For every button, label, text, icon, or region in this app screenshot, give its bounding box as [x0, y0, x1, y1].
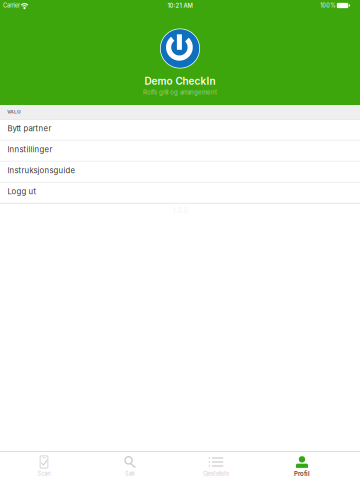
- staticText: Demo CheckIn: [144, 75, 215, 87]
- staticText: Søk: [125, 470, 135, 477]
- staticText: Innstillinger: [7, 145, 52, 154]
- staticText: Instruksjonsguide: [7, 166, 75, 175]
- staticText: Profil: [294, 470, 310, 477]
- button[interactable]: Logg ut: [0, 183, 360, 204]
- staticText: 100%: [320, 2, 335, 9]
- staticText: Gjesteliste: [203, 470, 229, 477]
- staticText: 10:21 AM: [167, 2, 192, 9]
- staticText: Logg ut: [7, 187, 36, 196]
- staticText: Scan: [37, 470, 50, 477]
- button[interactable]: Bytt partner: [0, 120, 360, 141]
- staticText: Bytt partner: [7, 124, 51, 133]
- staticText: VALG: [7, 109, 21, 115]
- button[interactable]: Gjesteliste: [173, 452, 259, 480]
- button[interactable]: Scan: [1, 452, 87, 480]
- button[interactable]: Instruksjonsguide: [0, 162, 360, 183]
- staticText: Rolfs grill og arrangement: [143, 89, 217, 96]
- staticText: Carrier: [3, 2, 20, 9]
- button[interactable]: Innstillinger: [0, 141, 360, 162]
- button[interactable]: Profil: [259, 452, 345, 480]
- staticText: 1.0.0: [172, 207, 187, 215]
- button[interactable]: Søk: [87, 452, 173, 480]
